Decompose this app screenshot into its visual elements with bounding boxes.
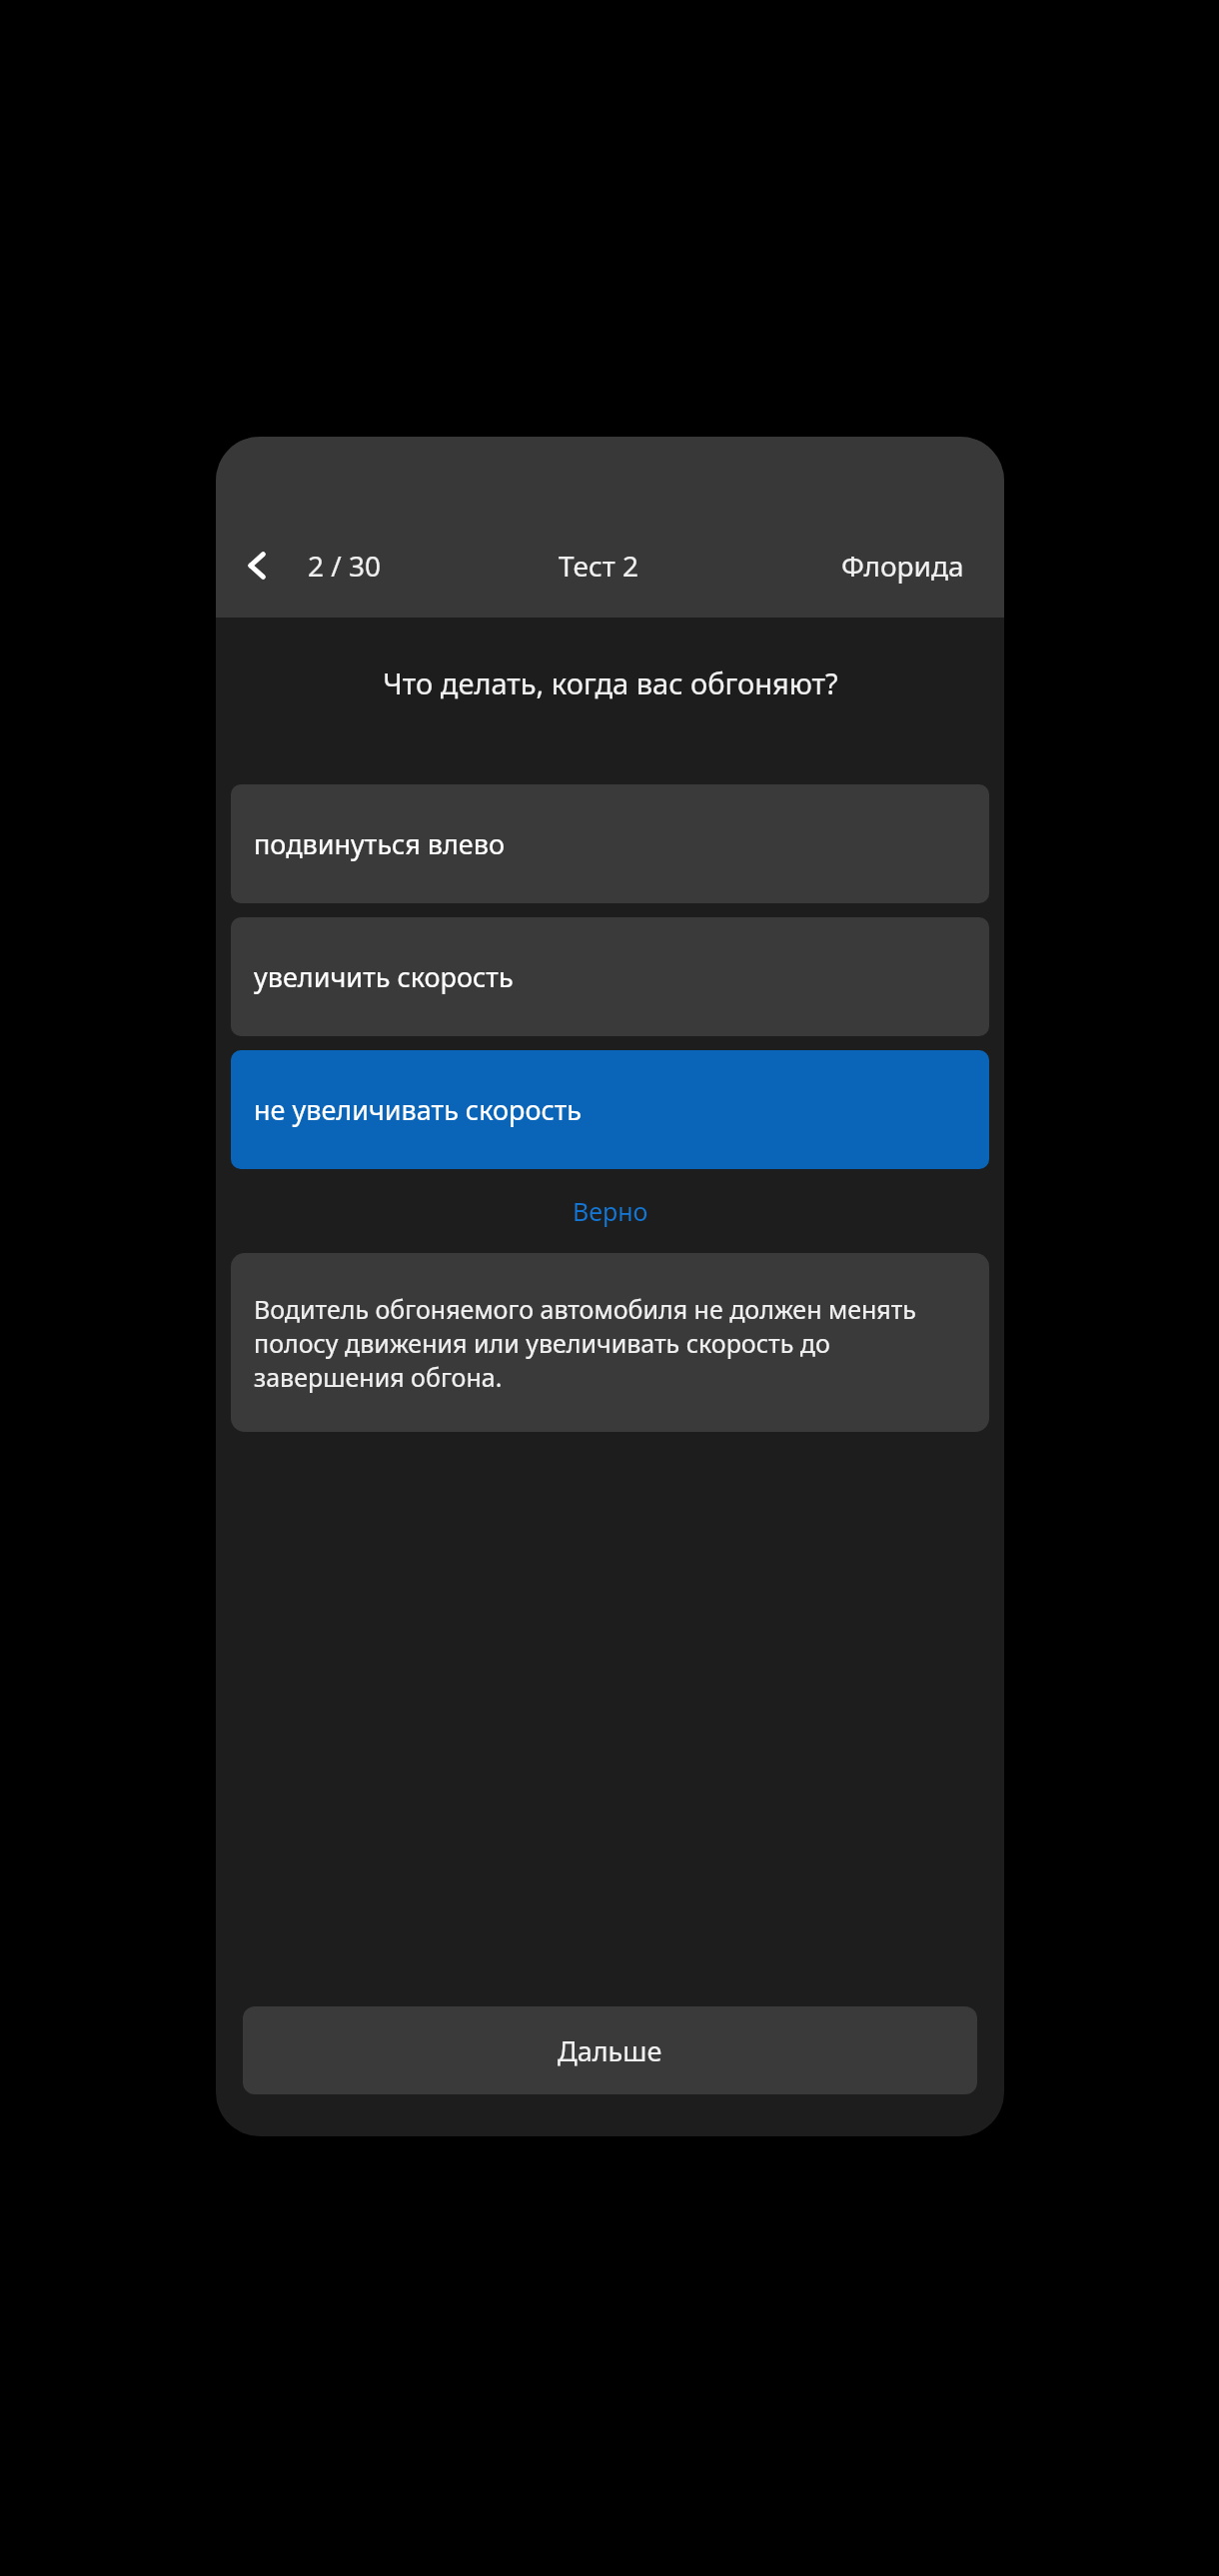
staticText: увеличить скорость <box>254 958 514 995</box>
button[interactable]: не увеличивать скорость <box>231 1050 989 1169</box>
button[interactable]: Дальше <box>243 2006 977 2094</box>
button[interactable]: увеличить скорость <box>231 917 989 1036</box>
staticText: Тест 2 <box>559 547 638 585</box>
staticText: Дальше <box>558 2032 662 2069</box>
staticText: Флорида <box>841 547 964 585</box>
staticText: не увеличивать скорость <box>254 1091 583 1128</box>
staticText: подвинуться влево <box>254 825 505 862</box>
button[interactable]: подвинуться влево <box>231 784 989 903</box>
staticText: Что делать, когда вас обгоняют? <box>383 663 838 702</box>
staticText: Верно <box>573 1194 648 1228</box>
button[interactable]: Back <box>226 534 290 598</box>
staticText: 2 / 30 <box>308 547 382 585</box>
staticText: Водитель обгоняемого автомобиля не долже… <box>254 1292 966 1394</box>
